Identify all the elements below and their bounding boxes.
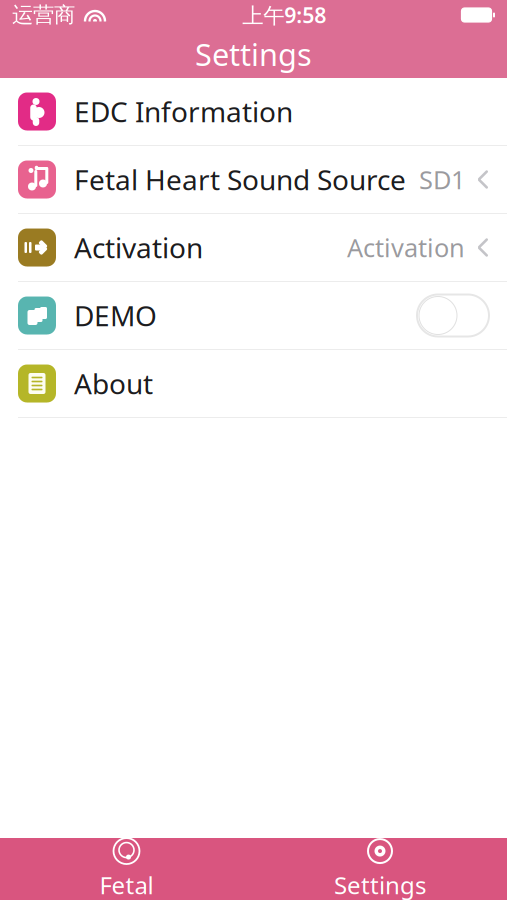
staticText: About — [74, 365, 153, 402]
staticText: Fetal Heart Sound Source — [74, 161, 406, 198]
button[interactable]: EDC Information — [0, 78, 507, 145]
staticText: Fetal — [99, 869, 153, 900]
button[interactable]: DEMO — [0, 282, 507, 349]
staticText: SD1 — [419, 163, 465, 196]
staticText: Settings — [334, 869, 426, 900]
staticText: Activation — [74, 229, 203, 266]
button[interactable]: Fetal Heart Sound Source — [0, 146, 507, 213]
button[interactable]: About — [0, 350, 507, 417]
button[interactable]: Activation — [0, 214, 507, 281]
staticText: DEMO — [74, 297, 157, 334]
button[interactable]: Settings — [253, 838, 507, 900]
staticText: Settings — [195, 34, 312, 74]
staticText: EDC Information — [74, 93, 293, 130]
staticText: 运营商 — [12, 2, 75, 28]
button[interactable]: Fetal — [0, 838, 253, 900]
staticText: Activation — [347, 231, 465, 264]
staticText: 上午9:58 — [242, 1, 326, 29]
